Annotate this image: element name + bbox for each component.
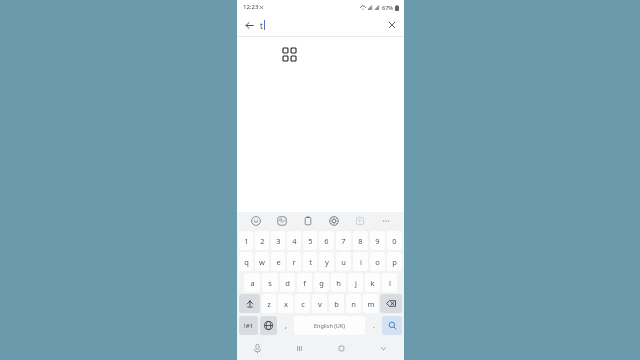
button[interactable]: f — [297, 273, 312, 292]
staticText: c — [301, 299, 305, 309]
button[interactable]: z — [262, 294, 276, 313]
staticText: t — [260, 20, 263, 31]
button[interactable]: l — [382, 273, 397, 292]
staticText: a — [250, 278, 255, 288]
staticText: z — [267, 299, 271, 309]
staticText: n — [351, 299, 356, 309]
button[interactable]: t — [303, 252, 317, 271]
staticText: 1 — [244, 236, 249, 246]
staticText: r — [292, 257, 296, 267]
staticText: t — [309, 257, 312, 267]
staticText: w — [259, 257, 265, 267]
staticText: x — [284, 299, 288, 309]
button[interactable]: v — [312, 294, 327, 313]
button[interactable]: s — [262, 273, 278, 292]
button[interactable]: Clear text — [384, 17, 400, 33]
button[interactable]: d — [280, 273, 295, 292]
button[interactable]: c — [295, 294, 310, 313]
button[interactable]: h — [331, 273, 346, 292]
staticText: . — [373, 321, 375, 331]
button[interactable]: o — [370, 252, 385, 271]
button[interactable]: Search — [382, 316, 402, 335]
button[interactable]: English (UK) — [294, 316, 365, 335]
button[interactable]: a — [244, 273, 260, 292]
button[interactable]: i — [353, 252, 368, 271]
button[interactable]: Back — [241, 17, 257, 33]
staticText: 7 — [341, 236, 346, 246]
button[interactable]: j — [348, 273, 363, 292]
staticText: v — [318, 299, 322, 309]
button[interactable]: w — [255, 252, 269, 271]
staticText: 9 — [375, 236, 380, 246]
button[interactable]: 0 — [387, 231, 402, 250]
button[interactable]: b — [329, 294, 344, 313]
staticText: m — [367, 299, 375, 309]
button[interactable]: e — [271, 252, 285, 271]
button[interactable]: g — [314, 273, 329, 292]
staticText: u — [341, 257, 346, 267]
button[interactable]: 6 — [319, 231, 334, 250]
staticText: e — [276, 257, 281, 267]
staticText: b — [334, 299, 339, 309]
button[interactable]: . — [367, 316, 380, 335]
button[interactable]: 1 — [239, 231, 253, 250]
staticText: h — [336, 278, 341, 288]
button[interactable]: n — [346, 294, 361, 313]
button[interactable]: x — [278, 294, 293, 313]
button[interactable]: Home — [320, 337, 362, 360]
button[interactable]: , — [279, 316, 292, 335]
button[interactable]: Clipboard — [295, 212, 321, 230]
staticText: k — [370, 278, 375, 288]
button[interactable]: Change language — [260, 316, 277, 335]
button[interactable]: q — [239, 252, 253, 271]
staticText: 0 — [392, 236, 397, 246]
staticText: o — [375, 257, 380, 267]
staticText: g — [319, 278, 324, 288]
button[interactable]: Emoji — [242, 212, 269, 230]
button[interactable]: Translate — [347, 212, 373, 230]
button[interactable]: p — [387, 252, 402, 271]
staticText: 5 — [308, 236, 313, 246]
staticText: y — [325, 257, 329, 267]
button[interactable]: r — [287, 252, 301, 271]
button[interactable]: t — [260, 17, 265, 33]
button[interactable]: m — [363, 294, 378, 313]
button[interactable]: 5 — [303, 231, 317, 250]
button[interactable]: Apps grid — [277, 42, 301, 66]
staticText: p — [392, 257, 397, 267]
button[interactable]: 2 — [255, 231, 269, 250]
staticText: l — [389, 278, 391, 288]
button[interactable]: Voice input — [237, 337, 278, 360]
staticText: 67% — [382, 4, 393, 11]
button[interactable]: 4 — [287, 231, 301, 250]
button[interactable]: Stickers — [269, 212, 295, 230]
staticText: 4 — [292, 236, 297, 246]
button[interactable]: 3 — [271, 231, 285, 250]
button[interactable]: !#1 — [239, 316, 258, 335]
staticText: j — [355, 278, 357, 288]
staticText: , — [285, 321, 287, 331]
staticText: English (UK) — [314, 322, 345, 329]
button[interactable]: Shift — [239, 294, 260, 313]
button[interactable]: More options — [373, 212, 399, 230]
staticText: !#1 — [244, 322, 253, 330]
staticText: q — [244, 257, 249, 267]
staticText: 8 — [358, 236, 363, 246]
staticText: s — [268, 278, 272, 288]
staticText: 6 — [324, 236, 329, 246]
button[interactable]: 8 — [353, 231, 368, 250]
button[interactable]: Backspace — [380, 294, 402, 313]
button[interactable]: 9 — [370, 231, 385, 250]
staticText: 12:23 — [243, 3, 259, 11]
button[interactable]: Recent apps — [278, 337, 320, 360]
button[interactable]: u — [336, 252, 351, 271]
staticText: 2 — [260, 236, 265, 246]
button[interactable]: y — [319, 252, 334, 271]
button[interactable]: Settings — [321, 212, 347, 230]
button[interactable]: Hide keyboard — [362, 337, 404, 360]
button[interactable]: k — [365, 273, 380, 292]
button[interactable]: 7 — [336, 231, 351, 250]
staticText: f — [303, 278, 306, 288]
staticText: 3 — [276, 236, 281, 246]
staticText: d — [285, 278, 290, 288]
